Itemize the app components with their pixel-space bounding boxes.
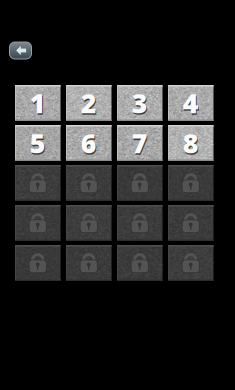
button[interactable]: 5 [15,125,60,161]
staticText: 6 [81,125,97,161]
staticText: 2 [81,87,97,122]
staticText: 7 [132,125,148,161]
button[interactable] [15,165,60,201]
staticText: 1 [30,85,46,121]
staticText: 2 [81,85,97,121]
button[interactable]: 4 [168,85,213,121]
button[interactable]: 6 [66,125,111,161]
button[interactable] [168,165,213,201]
button[interactable] [117,245,162,281]
button[interactable] [66,245,111,281]
staticText: 4 [183,85,199,121]
staticText: 3 [132,85,148,121]
button[interactable] [117,205,162,241]
staticText: 6 [81,127,97,162]
staticText: 1 [31,87,47,122]
button[interactable] [66,165,111,201]
button[interactable] [66,205,111,241]
button[interactable] [117,165,162,201]
staticText: 5 [31,127,47,162]
staticText: 3 [132,87,148,122]
staticText: 4 [183,87,199,122]
button[interactable]: Back [9,42,31,59]
button[interactable]: 2 [66,85,111,121]
button[interactable]: 3 [117,85,162,121]
button[interactable] [168,245,213,281]
button[interactable]: 8 [168,125,213,161]
button[interactable]: 7 [117,125,162,161]
button[interactable]: 1 [15,85,60,121]
staticText: 8 [183,125,199,161]
staticText: 8 [183,127,199,162]
staticText: 5 [30,125,46,161]
button[interactable] [15,205,60,241]
staticText: 7 [132,127,148,162]
button[interactable] [168,205,213,241]
button[interactable] [15,245,60,281]
